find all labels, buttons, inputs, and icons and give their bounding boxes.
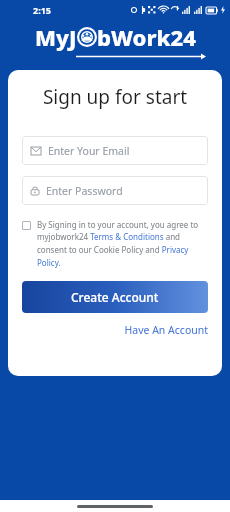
staticText: Enter Password — [46, 184, 123, 198]
staticText: Sign up for start — [22, 84, 208, 110]
staticText: bWork24 — [97, 22, 196, 52]
button[interactable]: Enter Your Email — [22, 136, 208, 165]
button[interactable]: Agree to terms — [22, 221, 31, 230]
staticText: 2:15 — [33, 4, 51, 16]
staticText: Create Account — [71, 289, 159, 305]
button[interactable]: Create Account — [22, 281, 208, 313]
staticText: Enter Your Email — [48, 144, 130, 158]
button[interactable]: Enter Password — [22, 176, 208, 205]
staticText: By Signing in to your account, you agree… — [37, 219, 208, 269]
button[interactable]: Have An Account — [22, 323, 208, 337]
staticText: MyJ — [35, 22, 77, 52]
